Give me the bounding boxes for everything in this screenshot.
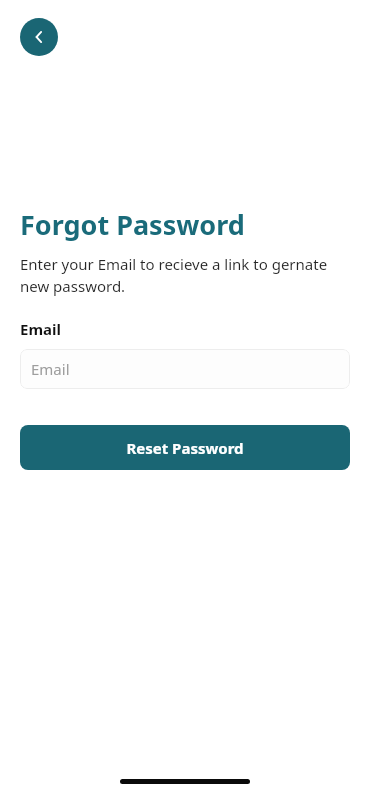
button[interactable]: Email <box>20 349 350 389</box>
staticText: Enter your Email to recieve a link to ge… <box>20 254 350 297</box>
staticText: Forgot Password <box>20 206 245 243</box>
staticText: Email <box>31 359 70 379</box>
staticText: Email <box>20 319 61 339</box>
button[interactable]: Back <box>20 18 58 56</box>
button[interactable]: Reset Password <box>20 425 350 470</box>
staticText: Reset Password <box>126 438 244 458</box>
